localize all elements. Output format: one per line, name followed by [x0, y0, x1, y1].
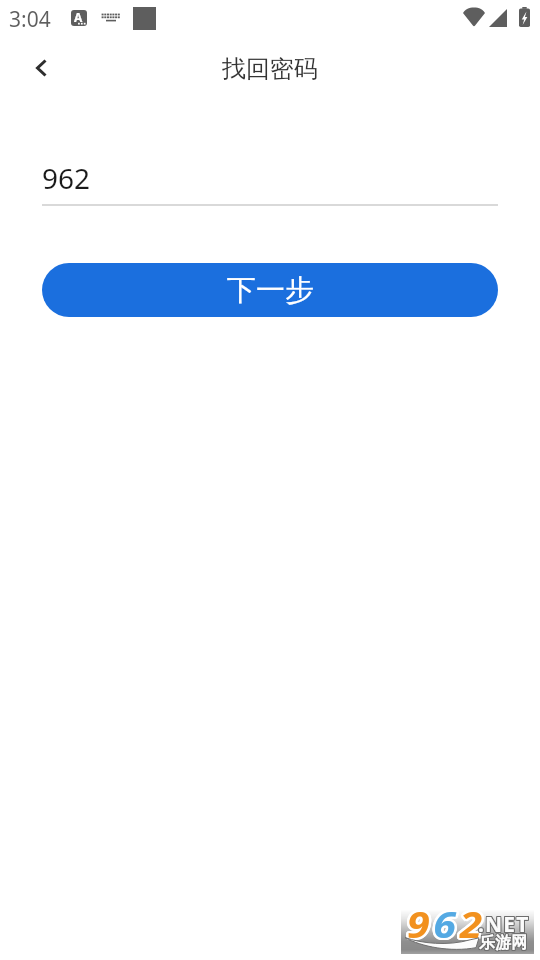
staticText: 9: [405, 901, 431, 945]
staticText: 6: [434, 900, 461, 944]
staticText: 6: [431, 900, 457, 944]
staticText: 9: [406, 902, 432, 946]
staticText: 9: [408, 898, 434, 942]
staticText: 6: [433, 902, 459, 946]
staticText: 乐游网: [479, 933, 527, 953]
staticText: 6: [433, 900, 459, 944]
staticText: 乐游网: [480, 933, 528, 953]
staticText: 9: [409, 900, 435, 944]
staticText: 2: [459, 902, 486, 946]
staticText: .NET: [479, 911, 531, 940]
staticText: 6: [431, 901, 457, 945]
staticText: 6: [434, 899, 461, 943]
staticText: 2: [457, 900, 483, 944]
staticText: 2: [458, 901, 484, 945]
staticText: 9: [406, 899, 432, 943]
staticText: 6: [433, 899, 459, 943]
staticText: 6: [432, 899, 458, 943]
staticText: 9: [407, 898, 433, 942]
staticText: 2: [462, 899, 488, 943]
staticText: 2: [462, 900, 488, 944]
staticText: .NET: [478, 909, 530, 938]
staticText: 9: [408, 902, 434, 946]
staticText: 乐游网: [478, 932, 526, 952]
staticText: .NET: [477, 911, 529, 940]
staticText: A: [74, 10, 83, 25]
staticText: 6: [434, 898, 461, 942]
staticText: 6: [433, 898, 459, 942]
staticText: 9: [408, 901, 434, 945]
staticText: 962: [42, 159, 91, 197]
staticText: 9: [407, 901, 433, 945]
staticText: 2: [457, 899, 483, 943]
staticText: 2: [458, 900, 484, 944]
staticText: .NET: [478, 910, 530, 939]
staticText: 6: [432, 902, 458, 946]
staticText: 2: [458, 898, 484, 942]
staticText: 6: [435, 899, 462, 943]
staticText: 乐游网: [480, 934, 528, 954]
staticText: 下一步: [227, 272, 314, 309]
staticText: 9: [406, 898, 432, 942]
staticText: 2: [461, 900, 487, 944]
staticText: 2: [457, 901, 483, 945]
staticText: 9: [405, 899, 431, 943]
staticText: 2: [461, 899, 487, 943]
staticText: 2: [458, 899, 484, 943]
staticText: 乐游网: [479, 934, 527, 954]
staticText: 9: [407, 902, 433, 946]
button[interactable]: 962: [42, 158, 498, 206]
staticText: 6: [435, 900, 462, 944]
staticText: 乐游网: [478, 933, 526, 953]
staticText: .NET: [479, 910, 531, 939]
staticText: 2: [458, 902, 484, 946]
button[interactable]: 下一步: [42, 263, 498, 317]
staticText: 9: [408, 899, 434, 943]
staticText: 9: [409, 901, 435, 945]
staticText: 2: [459, 900, 486, 944]
staticText: 6: [433, 901, 459, 945]
button[interactable]: Back: [17, 44, 65, 92]
staticText: 3:04: [9, 5, 51, 34]
staticText: 9: [406, 900, 432, 944]
staticText: 6: [432, 900, 458, 944]
staticText: 乐游网: [480, 932, 528, 952]
staticText: 6: [432, 901, 458, 945]
staticText: 2: [461, 902, 487, 946]
staticText: 2: [459, 898, 486, 942]
staticText: 6: [431, 899, 457, 943]
staticText: .NET: [479, 909, 531, 938]
staticText: 9: [407, 899, 433, 943]
staticText: 2: [462, 901, 488, 945]
staticText: 6: [432, 898, 458, 942]
staticText: 2: [461, 901, 487, 945]
staticText: 9: [408, 900, 434, 944]
staticText: 9: [406, 901, 432, 945]
staticText: 6: [434, 901, 461, 945]
staticText: .NET: [478, 911, 530, 940]
staticText: 乐游网: [479, 932, 527, 952]
staticText: 9: [405, 900, 431, 944]
staticText: 6: [435, 901, 462, 945]
staticText: .NET: [477, 910, 529, 939]
staticText: 2: [459, 899, 486, 943]
staticText: 2: [461, 898, 487, 942]
staticText: 6: [434, 902, 461, 946]
staticText: 9: [409, 899, 435, 943]
staticText: .NET: [477, 909, 529, 938]
staticText: 2: [459, 901, 486, 945]
staticText: 找回密码: [222, 54, 318, 84]
staticText: 9: [407, 900, 433, 944]
staticText: 乐游网: [478, 934, 526, 954]
